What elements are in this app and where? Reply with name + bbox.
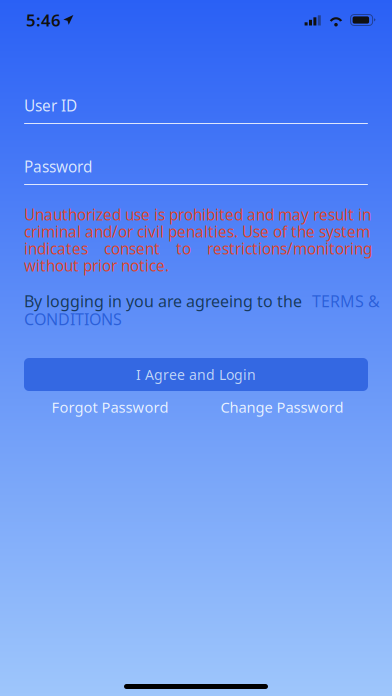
button[interactable]: Change Password xyxy=(196,396,368,418)
staticText: without prior notice. xyxy=(24,255,169,276)
button[interactable]: TERMS & xyxy=(312,292,382,310)
staticText: indicates consent to restrictions/monito… xyxy=(24,238,372,259)
staticText: criminal and/or civil penalties. Use of … xyxy=(24,221,370,242)
staticText: Password xyxy=(24,156,92,177)
staticText: User ID xyxy=(24,95,77,116)
staticText: Forgot Password xyxy=(51,397,168,417)
button[interactable]: I Agree and Login xyxy=(24,358,368,391)
button[interactable]: User ID xyxy=(24,96,368,124)
staticText: I Agree and Login xyxy=(136,365,256,384)
staticText: By logging in you are agreeing to the xyxy=(24,290,306,312)
button[interactable]: CONDITIONS xyxy=(24,310,124,328)
button[interactable]: Password xyxy=(24,157,368,185)
staticText: Unauthorized use is prohibited and may r… xyxy=(24,204,371,225)
button[interactable]: Forgot Password xyxy=(24,396,196,418)
staticText: Change Password xyxy=(220,397,343,417)
staticText: TERMS & xyxy=(312,290,380,312)
staticText: CONDITIONS xyxy=(24,308,122,330)
staticText: 5:46 xyxy=(26,9,61,31)
